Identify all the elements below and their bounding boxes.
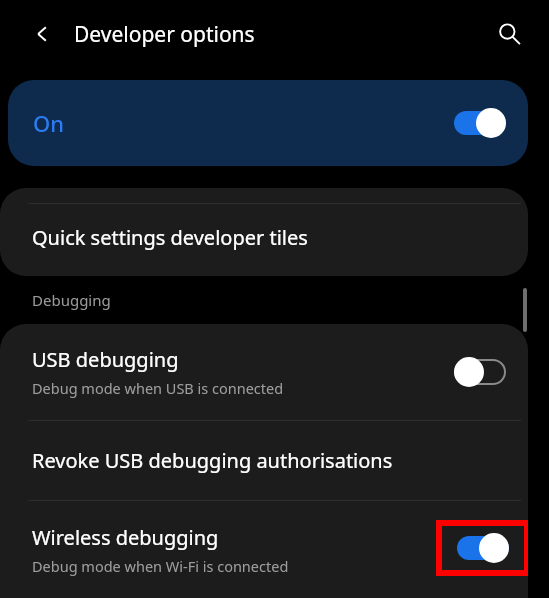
button[interactable]: Back <box>20 12 64 56</box>
button[interactable]: Quick settings developer tiles <box>0 188 528 276</box>
staticText: Debugging <box>32 290 111 310</box>
staticText: Debug mode when Wi-Fi is connected <box>32 556 289 576</box>
button[interactable]: On <box>8 80 528 166</box>
staticText: USB debugging <box>32 346 179 373</box>
button[interactable]: USB debugging <box>0 324 528 420</box>
staticText: On <box>33 108 65 138</box>
button[interactable]: Wireless debugging <box>0 501 528 598</box>
staticText: Revoke USB debugging authorisations <box>32 447 393 474</box>
staticText: Quick settings developer tiles <box>32 224 308 251</box>
button[interactable]: Revoke USB debugging authorisations <box>0 421 528 500</box>
staticText: Debug mode when USB is connected <box>32 378 284 398</box>
button[interactable]: Search <box>487 12 531 56</box>
staticText: Wireless debugging <box>32 524 219 551</box>
staticText: Developer options <box>74 20 255 49</box>
